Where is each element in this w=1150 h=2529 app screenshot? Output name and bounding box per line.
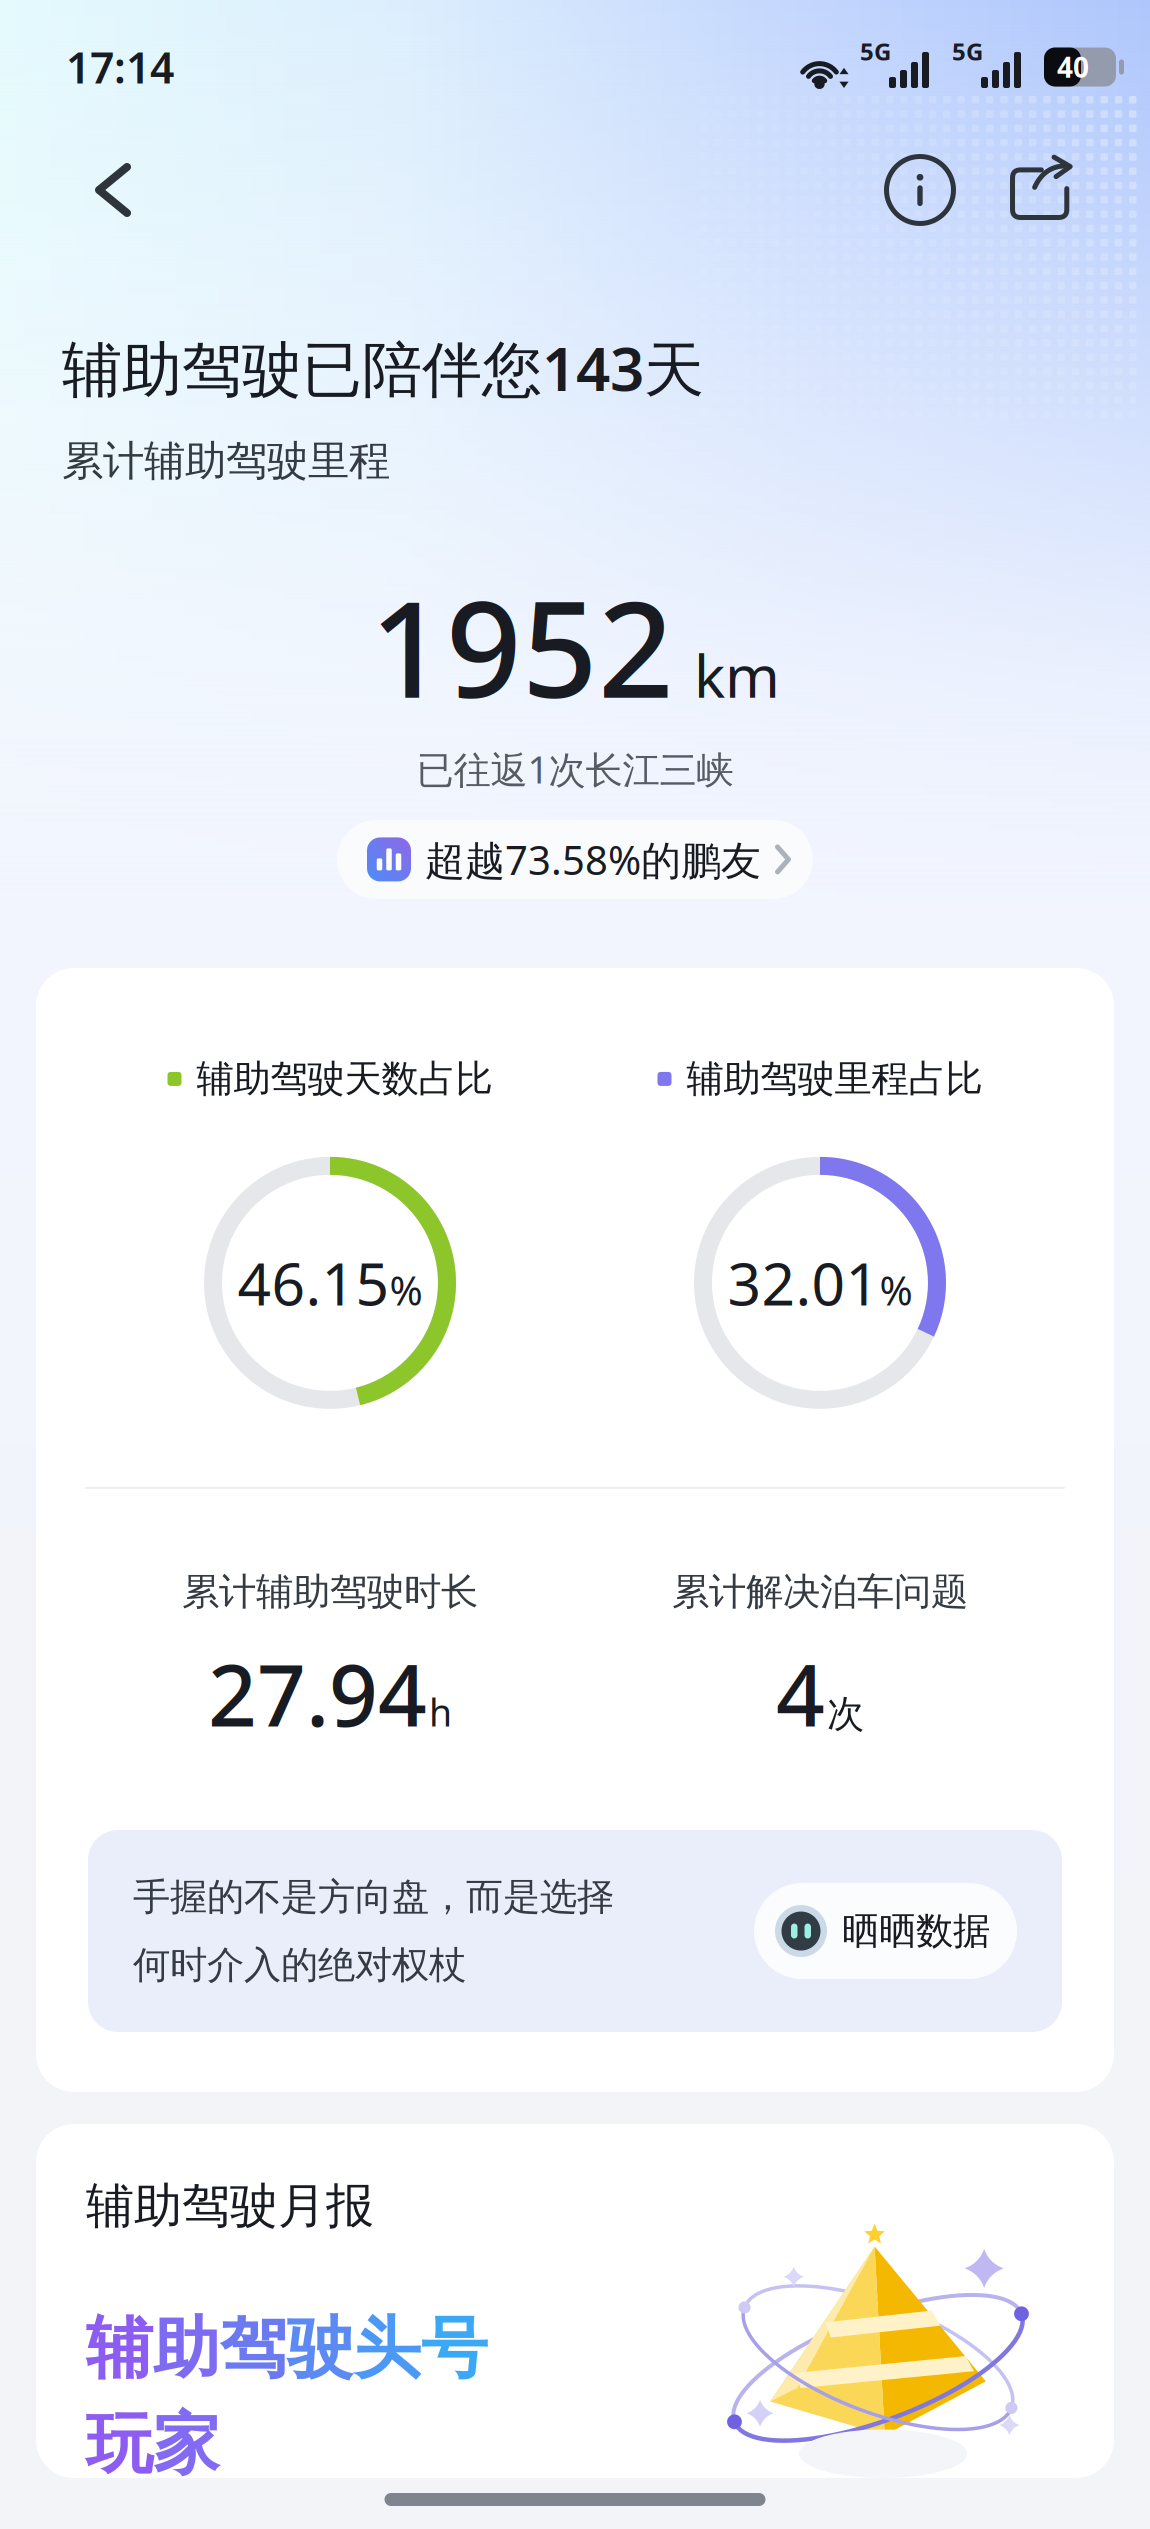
staticText: 辅	[86, 2308, 153, 2389]
staticText: 5G	[952, 35, 983, 67]
staticText: 40	[1057, 48, 1089, 86]
staticText: %	[879, 1263, 912, 1317]
staticText: 累计辅助驾驶时长	[182, 1569, 478, 1615]
staticText: 46.15	[237, 1244, 389, 1322]
staticText: 手握的不是方向盘，而是选择	[133, 1874, 614, 1920]
staticText: 超越73.58%的鹏友	[425, 833, 761, 886]
staticText: h	[429, 1687, 452, 1737]
staticText: 头	[354, 2308, 421, 2389]
staticText: 驾	[220, 2308, 287, 2389]
staticText: 已往返1次长江三峡	[416, 744, 733, 794]
staticText: %	[389, 1263, 422, 1317]
staticText: 号	[421, 2308, 488, 2389]
staticText: 家	[153, 2403, 220, 2485]
button[interactable]: Info	[868, 138, 972, 242]
staticText: 辅助驾驶月报	[86, 2177, 374, 2236]
staticText: 助	[153, 2308, 220, 2389]
staticText: 辅助驾驶里程占比	[686, 1056, 982, 1102]
staticText: km	[694, 636, 780, 714]
button[interactable]: 超越73.58%的鹏友	[337, 820, 813, 899]
staticText: 4	[776, 1637, 825, 1750]
staticText: 累计解决泊车问题	[672, 1569, 968, 1615]
staticText: 次	[827, 1691, 864, 1737]
staticText: 玩	[86, 2403, 153, 2485]
staticText: 辅助驾驶已陪伴您143天	[62, 328, 704, 408]
staticText: 晒晒数据	[842, 1908, 990, 1954]
staticText: 5G	[860, 35, 891, 67]
staticText: 32.01	[727, 1244, 879, 1322]
button[interactable]: Back	[62, 138, 164, 242]
button[interactable]: Share	[988, 138, 1092, 242]
staticText: 驶	[287, 2308, 354, 2389]
staticText: 累计辅助驾驶里程	[62, 436, 390, 486]
staticText: 辅助驾驶天数占比	[196, 1056, 492, 1102]
staticText: 27.94	[208, 1637, 427, 1750]
staticText: 1952	[370, 559, 674, 734]
button[interactable]: 晒晒数据	[754, 1883, 1017, 1979]
staticText: 17:14	[66, 39, 174, 95]
staticText: 何时介入的绝对权杖	[133, 1942, 466, 1988]
